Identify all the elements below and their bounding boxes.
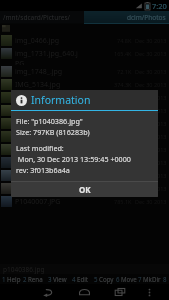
staticText: Dec 30 2013: [135, 50, 167, 57]
staticText: View: [53, 275, 67, 283]
staticText: dcim/Photos: [127, 13, 166, 22]
staticText: Dec 30 2013: [135, 159, 167, 166]
button[interactable]: IMG_5188.jpg: [0, 117, 169, 130]
staticText: 4: [72, 275, 76, 283]
staticText: P1040007.JPG: [15, 197, 61, 207]
staticText: img_0466.jpg: [15, 36, 60, 46]
staticText: Dec 30 2013: [135, 68, 167, 75]
button[interactable]: Home: [66, 284, 102, 300]
staticText: 74.8K: [117, 37, 132, 44]
staticText: Information: [31, 93, 91, 107]
button[interactable]: IMG_5143.jpg: [0, 91, 169, 104]
staticText: Dec 30 2013: [135, 172, 167, 179]
button[interactable]: /mnt/sdcard/Pictures/: [0, 11, 84, 23]
staticText: Dec 30 2013: [135, 198, 167, 205]
button[interactable]: MkDir: [138, 274, 161, 284]
staticText: Mon, 30 Dec 2013 13:59:45 +0000: [16, 154, 131, 164]
staticText: 7:20: [152, 1, 167, 11]
staticText: IMG_5201.jpg: [15, 132, 61, 142]
staticText: OK: [79, 184, 91, 195]
button[interactable]: Recent apps: [102, 284, 138, 300]
staticText: Dec 30 2013: [135, 185, 167, 192]
staticText: 1: [2, 275, 6, 283]
staticText: Help: [7, 275, 21, 283]
staticText: IMG_5157.jpg: [15, 106, 61, 116]
staticText: img_1731.jpg_640.j: [15, 49, 78, 59]
staticText: Dec 30 2013: [135, 107, 167, 114]
button[interactable]: img_1748_.jpg: [0, 65, 169, 78]
staticText: IMG_5143.jpg: [15, 93, 61, 103]
button[interactable]: Menu: [138, 284, 160, 300]
staticText: Rename: [28, 275, 46, 283]
staticText: 374.3K: [114, 81, 132, 88]
button[interactable]: IMG_5233.jpg: [0, 143, 169, 156]
staticText: p1020244.jpg: [15, 171, 60, 181]
button[interactable]: Menu: [161, 274, 169, 284]
button[interactable]: img_1731.jpg_640.j: [0, 47, 169, 65]
button[interactable]: img_0466.jpg: [0, 34, 169, 47]
staticText: 3: [48, 275, 52, 283]
staticText: Copy: [99, 275, 114, 283]
staticText: img_1748_.jpg: [15, 67, 63, 77]
staticText: Dec 30 2013: [135, 37, 167, 44]
staticText: rev: 3f013b6a4a: [16, 165, 70, 175]
staticText: Edit: [77, 275, 89, 283]
staticText: 8: [163, 275, 167, 283]
button[interactable]: Move: [115, 274, 138, 284]
button[interactable]: OK: [11, 182, 158, 197]
staticText: 785.1K: [114, 198, 132, 205]
button[interactable]: Copy: [92, 274, 115, 284]
staticText: IMG_5188.jpg: [15, 119, 61, 129]
staticText: 2: [23, 275, 27, 283]
button[interactable]: View: [46, 274, 69, 284]
staticText: Dec 30 2013: [135, 94, 167, 101]
staticText: Move: [121, 275, 137, 283]
staticText: P1010867.JPG: [15, 158, 61, 168]
button[interactable]: [0, 24, 169, 34]
staticText: 7: [138, 275, 142, 283]
staticText: 6: [116, 275, 120, 283]
button[interactable]: IMG_5201.jpg: [0, 130, 169, 143]
button[interactable]: IMG_5134.jpg: [0, 78, 169, 91]
button[interactable]: Back: [30, 284, 66, 300]
staticText: IMG_5233.jpg: [15, 145, 61, 155]
staticText: Size: 797KB (816283b): [16, 127, 90, 137]
staticText: Dec 30 2013: [135, 120, 167, 127]
staticText: 5: [94, 275, 98, 283]
button[interactable]: P1010867.JPG: [0, 156, 169, 169]
staticText: Last modified:: [16, 143, 64, 153]
button[interactable]: IMG_5157.jpg: [0, 104, 169, 117]
staticText: File: "p1040386.jpg": [16, 116, 83, 126]
button[interactable]: dcim/Photos: [84, 11, 169, 23]
staticText: 894.4K: [114, 159, 132, 166]
button[interactable]: Help: [0, 274, 23, 284]
staticText: MkDir: [143, 275, 161, 283]
button[interactable]: Rename: [23, 274, 46, 284]
button[interactable]: p1020900.jpg: [0, 182, 169, 195]
staticText: IMG_5134.jpg: [15, 80, 61, 90]
staticText: PG: [15, 59, 25, 65]
staticText: Dec 30 2013: [135, 133, 167, 140]
staticText: Dec 30 2013: [135, 146, 167, 153]
staticText: Dec 30 2013: [135, 81, 167, 88]
staticText: /mnt/sdcard/Pictures/: [3, 13, 70, 22]
staticText: 240.2K: [114, 107, 132, 114]
button[interactable]: p1020244.jpg: [0, 169, 169, 182]
staticText: 72.1K: [117, 68, 132, 75]
staticText: 165.4K: [114, 50, 132, 57]
staticText: p1040386.jpg: [3, 265, 45, 274]
button[interactable]: P1040007.JPG: [0, 195, 169, 208]
button[interactable]: Edit: [69, 274, 92, 284]
